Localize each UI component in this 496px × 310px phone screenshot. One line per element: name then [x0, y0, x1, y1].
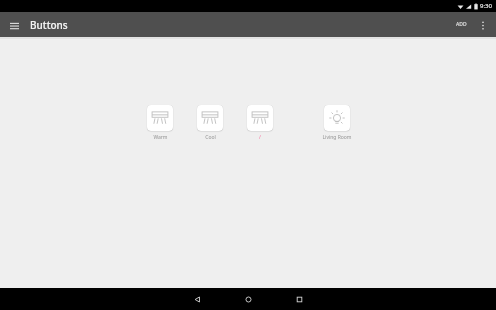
staticText: Living Room [322, 134, 352, 141]
staticText: Buttons [30, 18, 68, 32]
staticText: 9:30 [480, 2, 492, 10]
button[interactable]: Open navigation drawer [6, 17, 22, 33]
staticText: Warm [153, 134, 168, 141]
button[interactable]: / [238, 105, 282, 141]
button[interactable]: More options [475, 17, 491, 33]
staticText: ADD [456, 21, 467, 28]
button[interactable]: ADD [452, 17, 471, 32]
button[interactable]: Home [233, 288, 263, 310]
button[interactable]: Back [182, 288, 212, 310]
button[interactable]: Cool [188, 105, 232, 141]
button[interactable]: Recent apps [284, 288, 314, 310]
button[interactable]: Warm [138, 105, 182, 141]
button[interactable]: Living Room [315, 105, 359, 141]
staticText: Cool [205, 134, 216, 141]
staticText: / [259, 134, 261, 141]
